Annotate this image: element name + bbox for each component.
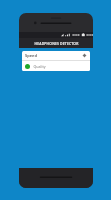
staticText: Quality <box>33 64 46 69</box>
button[interactable]: Quality <box>22 61 90 71</box>
button[interactable]: HEADPHONES DETECTOR <box>19 38 93 48</box>
staticText: HEADPHONES DETECTOR <box>34 41 79 46</box>
button[interactable]: Speed <box>22 51 90 60</box>
staticText: Speed <box>25 53 37 58</box>
other: More options <box>82 53 87 58</box>
